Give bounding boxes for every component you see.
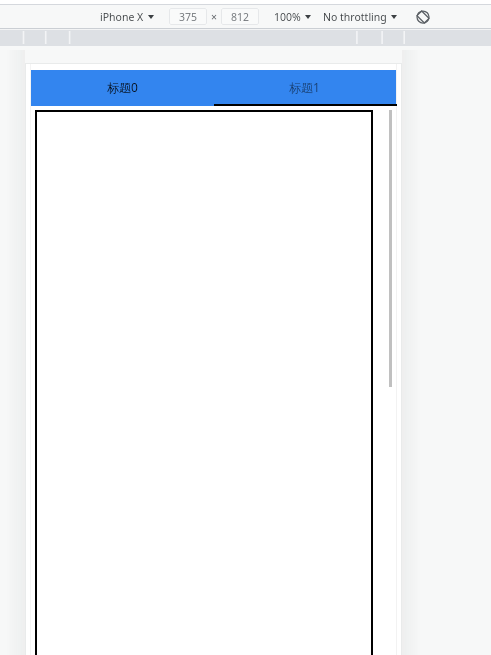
staticText: 375 xyxy=(179,10,198,24)
staticText: 812 xyxy=(231,10,250,24)
button[interactable]: Toggle media queries xyxy=(411,5,434,28)
button[interactable]: 812 xyxy=(221,8,259,25)
button[interactable]: 标题0 xyxy=(31,70,213,106)
button[interactable]: iPhone X xyxy=(97,5,157,28)
button[interactable]: 标题1 xyxy=(213,70,396,106)
staticText: 100% xyxy=(274,10,301,24)
staticText: 标题1 xyxy=(289,79,320,95)
staticText: No throttling xyxy=(323,10,387,24)
button[interactable]: 100% xyxy=(271,5,314,28)
button[interactable]: No throttling xyxy=(320,5,400,28)
staticText: × xyxy=(211,10,218,24)
staticText: 标题0 xyxy=(107,79,138,95)
button[interactable]: 375 xyxy=(169,8,207,25)
staticText: iPhone X xyxy=(100,10,144,24)
